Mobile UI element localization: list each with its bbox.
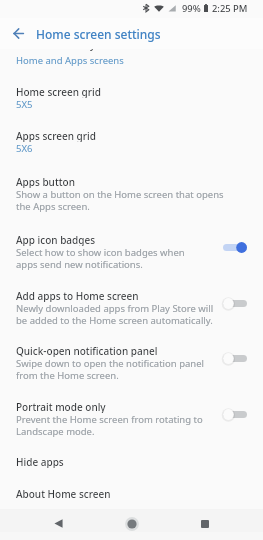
button[interactable]: Back (43, 512, 73, 535)
staticText: Add apps to Home screen (16, 289, 139, 302)
button[interactable]: Quick-open notification panel (0, 344, 263, 384)
staticText: 5X6 (16, 142, 33, 155)
staticText: About Home screen (16, 487, 111, 500)
button[interactable]: Portrait mode only (0, 400, 263, 440)
staticText: Quick-open notification panel (16, 344, 158, 357)
button[interactable]: Switch on (223, 241, 247, 254)
button[interactable]: Home (117, 512, 147, 535)
staticText: Swipe down to open the notification pane… (16, 357, 205, 382)
button[interactable]: Navigate up (0, 18, 36, 49)
button[interactable]: App icon badges (0, 233, 263, 273)
button[interactable]: Apps screen grid (0, 129, 263, 157)
staticText: 99% (182, 2, 201, 15)
staticText: App icon badges (16, 233, 96, 246)
button[interactable]: Home screen layout (0, 39, 263, 67)
staticText: Home screen settings (36, 26, 161, 42)
staticText: Hide apps (16, 455, 64, 468)
staticText: Home screen layout (16, 37, 112, 51)
button[interactable]: Add apps to Home screen (0, 289, 263, 329)
staticText: Home and Apps screens (16, 54, 124, 67)
button[interactable]: Switch off (223, 352, 247, 365)
staticText: 2:25 PM (212, 2, 248, 15)
staticText: Select how to show icon badges when apps… (16, 246, 185, 271)
staticText: Show a button on the Home screen that op… (16, 188, 224, 213)
staticText: Apps screen grid (16, 129, 96, 142)
button[interactable]: Home screen grid (0, 85, 263, 113)
button[interactable]: Hide apps (0, 455, 263, 475)
button[interactable]: Switch off (223, 408, 247, 421)
staticText: Home screen grid (16, 85, 101, 98)
button[interactable]: Recent apps (190, 512, 220, 535)
button[interactable]: Switch off (223, 297, 247, 310)
staticText: Apps button (16, 175, 75, 188)
button[interactable]: About Home screen (0, 487, 263, 507)
staticText: 5X5 (16, 98, 33, 111)
staticText: Newly downloaded apps from Play Store wi… (16, 302, 214, 327)
staticText: Portrait mode only (16, 400, 106, 413)
staticText: Prevent the Home screen from rotating to… (16, 413, 203, 438)
button[interactable]: Apps button (0, 175, 263, 215)
